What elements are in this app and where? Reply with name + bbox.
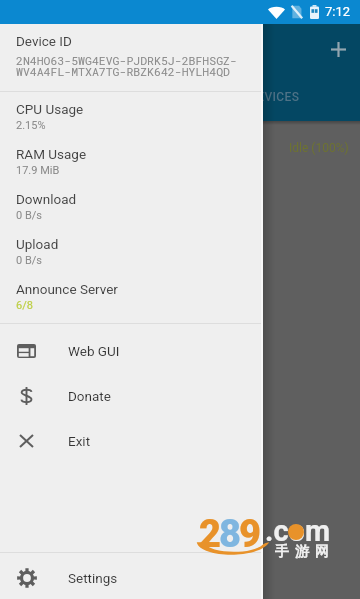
staticText: RAM Usage (16, 146, 87, 162)
staticText: 0 B/s (16, 254, 42, 267)
staticText: 2.15% (16, 119, 46, 132)
button[interactable]: DEVICES (249, 90, 300, 104)
staticText: 0 B/s (16, 209, 42, 222)
staticText: Announce Server (16, 281, 118, 297)
button[interactable]: Add (315, 26, 360, 72)
staticText: 2N4HO63-5WG4EVG-PJDRK5J-2BFHSGZ- WV4A4FL… (16, 53, 237, 79)
staticText: Download (16, 191, 77, 207)
staticText: 6/8 (16, 299, 33, 312)
staticText: 2 (199, 512, 222, 557)
button[interactable]: RAM Usage (0, 139, 261, 183)
button[interactable]: Announce Server (0, 274, 261, 318)
button[interactable]: Download (0, 184, 261, 228)
staticText: Upload (16, 236, 59, 252)
staticText: CPU Usage (16, 101, 84, 117)
staticText: .com (265, 514, 331, 548)
staticText: Donate (68, 388, 111, 404)
staticText: Device ID (16, 33, 72, 49)
button[interactable]: Donate (0, 373, 261, 418)
staticText: Exit (68, 433, 91, 449)
button[interactable]: Exit (0, 418, 261, 463)
button[interactable]: Web GUI (0, 328, 261, 373)
staticText: Settings (68, 570, 118, 586)
staticText: Idle (100%) (289, 141, 349, 155)
button[interactable]: Settings (0, 555, 261, 599)
button[interactable]: Upload (0, 229, 261, 273)
staticText: 9 (239, 512, 262, 557)
staticText: Web GUI (68, 343, 120, 359)
staticText: 手游网 (272, 543, 332, 561)
staticText: 8 (219, 512, 242, 557)
staticText: 7:12 (325, 4, 351, 19)
staticText: 17.9 MiB (16, 164, 60, 177)
button[interactable]: CPU Usage (0, 94, 261, 138)
